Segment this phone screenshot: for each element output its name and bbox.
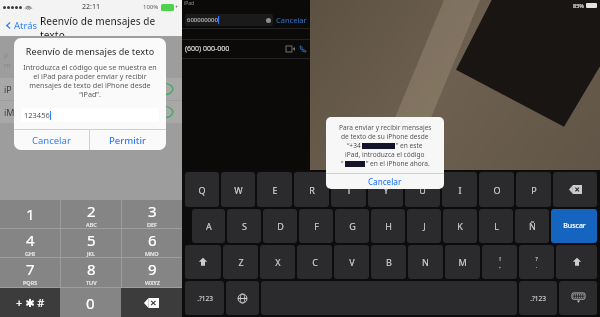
staticText: 6: [148, 230, 157, 250]
button[interactable]: Buscar: [551, 209, 597, 243]
button[interactable]: Ocultar teclado: [559, 281, 597, 315]
button[interactable]: Ñ: [515, 209, 549, 243]
button[interactable]: Cancelar: [276, 15, 307, 25]
button[interactable]: 6: [122, 229, 182, 257]
staticText: 0: [86, 293, 95, 313]
button[interactable]: 8: [61, 258, 121, 287]
button[interactable]: T: [331, 172, 366, 207]
button[interactable]: N: [408, 245, 443, 279]
button[interactable]: Cancelar: [14, 130, 89, 150]
staticText: T: [346, 184, 352, 196]
button[interactable]: R: [294, 172, 329, 207]
staticText: GHI: [25, 250, 36, 257]
staticText: E: [272, 184, 278, 196]
button[interactable]: ? .: [519, 245, 554, 279]
staticText: Cancelar: [368, 176, 402, 187]
button[interactable]: 600000000: [185, 14, 273, 26]
button[interactable]: Permitir: [90, 130, 166, 150]
button[interactable]: (600) 000-000: [185, 40, 307, 58]
button[interactable]: S: [227, 209, 261, 243]
button[interactable]: L: [479, 209, 513, 243]
staticText: P: [531, 184, 537, 196]
button[interactable]: J: [407, 209, 441, 243]
button[interactable]: A: [192, 209, 225, 243]
staticText: I: [458, 184, 462, 196]
staticText: iPad: [184, 0, 195, 7]
button[interactable]: 3: [122, 200, 182, 228]
staticText: 22:11: [82, 2, 100, 12]
button[interactable]: 123456: [21, 108, 159, 122]
button[interactable]: + ✱ #: [0, 288, 60, 317]
staticText: 2: [87, 201, 96, 221]
staticText: .?123: [197, 294, 213, 303]
staticText: PQRS: [23, 279, 38, 286]
staticText: M: [458, 256, 467, 268]
button[interactable]: M: [445, 245, 480, 279]
staticText: N: [422, 256, 429, 268]
other: FaceTime: [286, 46, 295, 52]
button[interactable]: 7: [0, 258, 60, 287]
button[interactable]: 9: [122, 258, 182, 287]
staticText: P m: [4, 52, 11, 70]
button[interactable]: Cambiar teclado: [226, 281, 259, 315]
staticText: 5: [87, 230, 96, 250]
button[interactable]: iP: [0, 78, 182, 100]
staticText: C: [312, 256, 318, 268]
button[interactable]: Retroceso: [553, 172, 597, 207]
button[interactable]: B: [371, 245, 406, 279]
button[interactable]: I: [442, 172, 477, 207]
button[interactable]: H: [371, 209, 405, 243]
staticText: W: [234, 184, 243, 196]
staticText: ! ,: [499, 255, 501, 270]
button[interactable]: W: [221, 172, 255, 207]
button[interactable]: Y: [368, 172, 403, 207]
staticText: iPad, introduzca el código: [345, 150, 425, 159]
button[interactable]: K: [443, 209, 477, 243]
button[interactable]: 4: [0, 229, 60, 257]
button[interactable]: E: [257, 172, 292, 207]
button[interactable]: Z: [223, 245, 258, 279]
other: Llamar: [299, 45, 307, 53]
staticText: “: [341, 159, 344, 168]
staticText: 4: [26, 230, 35, 250]
button[interactable]: Cancelar: [326, 174, 444, 189]
button[interactable]: U: [405, 172, 440, 207]
button[interactable]: P: [516, 172, 551, 207]
button[interactable]: iM: [0, 101, 182, 123]
button[interactable]: X: [260, 245, 295, 279]
button[interactable]: O: [479, 172, 514, 207]
staticText: G: [349, 220, 356, 232]
staticText: Buscar: [563, 221, 586, 231]
staticText: O: [493, 184, 501, 196]
staticText: 7: [26, 259, 35, 279]
staticText: B: [386, 256, 392, 268]
staticText: V: [349, 256, 355, 268]
button[interactable]: 1: [0, 200, 60, 228]
button[interactable]: 5: [61, 229, 121, 257]
staticText: +: [175, 3, 179, 11]
other: Atrás: [4, 21, 13, 30]
staticText: 85%: [573, 2, 584, 9]
button[interactable]: ! ,: [482, 245, 517, 279]
button[interactable]: .?123: [185, 281, 224, 315]
button[interactable]: .?123: [519, 281, 557, 315]
button[interactable]: C: [297, 245, 332, 279]
staticText: S: [242, 220, 247, 232]
button[interactable]: Mayúsculas: [556, 245, 597, 279]
button[interactable]: G: [335, 209, 369, 243]
button[interactable]: 0: [60, 288, 121, 317]
staticText: Reenvío de mensajes de texto: [19, 45, 161, 57]
button[interactable]: Atrás: [4, 19, 38, 32]
staticText: Z: [238, 256, 244, 268]
staticText: 123456: [24, 110, 50, 120]
button[interactable]: Q: [185, 172, 219, 207]
button[interactable]: D: [263, 209, 297, 243]
button[interactable]: V: [334, 245, 369, 279]
staticText: 1: [26, 204, 35, 224]
button[interactable]: Borrar: [121, 288, 182, 317]
button[interactable]: 2: [61, 200, 121, 228]
staticText: “+34: [347, 141, 361, 150]
button[interactable]: Mayúsculas: [185, 245, 221, 279]
button[interactable]: F: [299, 209, 333, 243]
